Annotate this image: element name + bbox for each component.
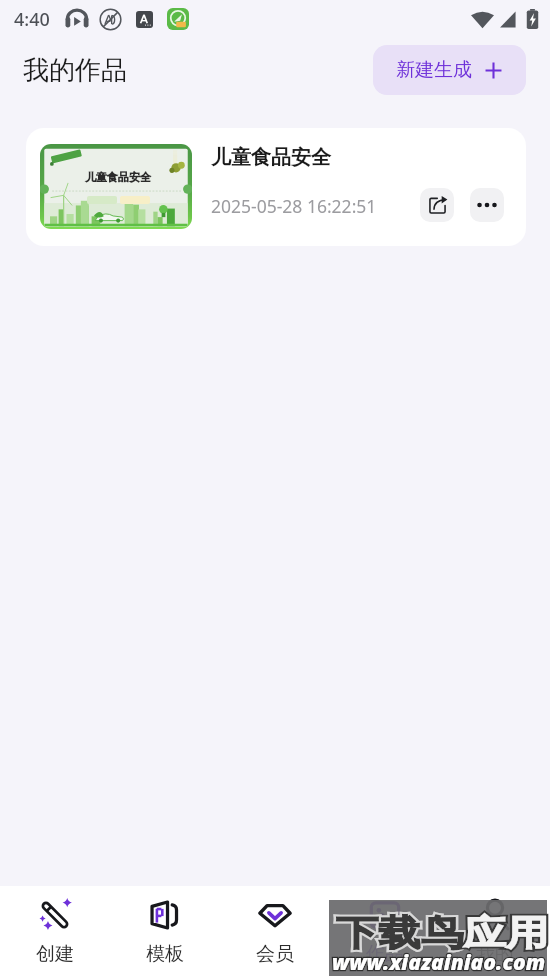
button[interactable]: More options [470, 188, 504, 222]
staticText: 应用 [463, 911, 548, 955]
button[interactable]: Share [420, 188, 454, 222]
staticText: 我的作品 [23, 54, 127, 87]
staticText: 模板 [146, 942, 184, 966]
staticText: 会员 [256, 942, 294, 966]
staticText: 作品 [366, 942, 404, 966]
staticText: 新建生成 [396, 58, 472, 82]
staticText: 下载鸟 [336, 911, 463, 955]
staticText: 4:40 [14, 7, 50, 32]
staticText: www.xiazainiao.com [332, 948, 546, 977]
staticText: 2025-05-28 16:22:51 [211, 194, 377, 218]
button[interactable]: 创建 [0, 886, 110, 977]
staticText: 我的 [476, 942, 514, 966]
button[interactable]: 儿童食品安全 [26, 128, 526, 246]
staticText: 下载鸟 [336, 911, 463, 955]
staticText: 儿童食品安全 [85, 170, 151, 184]
staticText: 应用 [463, 911, 548, 955]
button[interactable]: 会员 [220, 886, 330, 977]
staticText: 儿童食品安全 [211, 145, 331, 170]
button[interactable]: 模板 [110, 886, 220, 977]
staticText: 创建 [36, 942, 74, 966]
button[interactable]: 作品 [330, 886, 440, 977]
staticText: www.xiazainiao.com [332, 948, 546, 977]
button[interactable]: 新建生成 [373, 45, 526, 95]
button[interactable]: 我的 [440, 886, 550, 977]
